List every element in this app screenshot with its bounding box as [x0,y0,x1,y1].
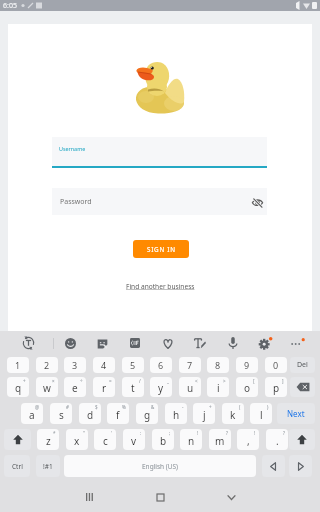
button[interactable]: q [7,377,29,397]
button[interactable]: c [94,429,116,450]
staticText: = [109,378,112,384]
button[interactable]: g [136,403,158,424]
staticText: ? [283,430,285,436]
staticText: × [52,378,55,384]
button[interactable]: w [36,377,58,397]
button[interactable]: Del [290,357,315,373]
button[interactable]: Find another business [126,282,195,291]
button[interactable]: l [250,403,272,424]
staticText: ( [239,404,241,410]
staticText: s [59,408,64,422]
button[interactable]: j [193,403,215,424]
staticText: ÷ [80,378,83,384]
button[interactable]: 3 [64,357,86,373]
staticText: + [23,378,26,384]
button[interactable]: !#1 [36,455,60,477]
staticText: c [103,434,108,448]
button[interactable]: 0 [265,357,287,373]
staticText: @ [35,404,40,410]
button[interactable]: s [50,403,72,424]
button[interactable]: English (US) [64,455,256,477]
button[interactable]: Favourites [158,333,178,353]
staticText: SIGN IN [147,245,176,254]
staticText: Username [59,145,86,152]
staticText: Find another business [126,282,195,291]
staticText: n [188,434,195,448]
staticText: t [131,381,135,395]
staticText: < [195,378,198,384]
button[interactable]: r [93,377,115,397]
button[interactable]: b [152,429,174,450]
button[interactable]: x [66,429,88,450]
staticText: 6 [158,359,164,371]
button[interactable]: Shift [289,429,315,450]
staticText: ' [111,430,113,436]
staticText: ! [197,430,199,436]
button[interactable]: Translate [18,333,38,353]
staticText: # [66,404,69,410]
button[interactable]: Move cursor right [289,455,312,477]
staticText: Next [287,408,305,419]
staticText: ) [267,404,269,410]
staticText: English (US) [142,462,179,471]
button[interactable]: Move cursor left [262,455,285,477]
staticText: - [182,404,184,410]
button[interactable]: p [265,377,287,397]
button[interactable]: Shift [4,429,31,450]
staticText: [ [253,378,255,384]
button[interactable]: Voice input [223,333,243,353]
button[interactable]: GIF [125,333,145,353]
button[interactable]: . [266,429,288,450]
button[interactable]: m [209,429,231,450]
button[interactable]: k [222,403,244,424]
button[interactable]: i [207,377,229,397]
staticText: !#1 [43,462,53,471]
button[interactable]: Next [277,403,315,424]
button[interactable]: 8 [207,357,229,373]
staticText: Ctrl [12,462,23,471]
button[interactable]: 6 [150,357,172,373]
staticText: * [53,430,56,436]
button[interactable]: y [150,377,172,397]
button[interactable]: v [123,429,145,450]
button[interactable]: Emoji [60,333,80,353]
button[interactable]: t [122,377,144,397]
button[interactable]: Show password [249,194,265,210]
button[interactable]: a [21,403,43,424]
staticText: l [260,408,263,422]
button[interactable]: 9 [236,357,258,373]
button[interactable]: SIGN IN [133,240,189,258]
button[interactable]: e [64,377,86,397]
button[interactable]: z [37,429,59,450]
button[interactable]: , [237,429,259,450]
button[interactable]: Backspace [290,377,315,397]
button[interactable]: f [107,403,129,424]
button[interactable]: 5 [122,357,144,373]
staticText: 3 [72,359,78,371]
button[interactable]: Ctrl [4,455,30,477]
staticText: 6:05 [3,1,17,11]
button[interactable]: More [287,333,307,353]
button[interactable]: d [79,403,101,424]
button[interactable]: u [179,377,201,397]
button[interactable]: Stickers [92,333,112,353]
button[interactable]: 1 [7,357,29,373]
staticText: w [43,381,51,395]
button[interactable]: 2 [36,357,58,373]
button[interactable]: Home [144,484,176,510]
button[interactable]: Recent apps [74,484,106,510]
staticText: f [116,408,120,422]
staticText: e [72,381,78,395]
staticText: q [15,381,22,395]
staticText: ! [254,430,256,436]
button[interactable]: n [180,429,202,450]
button[interactable]: Text editing [190,333,210,353]
button[interactable]: h [165,403,187,424]
button[interactable]: Settings [256,333,276,353]
button[interactable]: o [236,377,258,397]
button[interactable]: Back [215,484,247,510]
staticText: a [29,408,35,422]
staticText: i [217,381,220,395]
button[interactable]: 4 [93,357,115,373]
button[interactable]: 7 [179,357,201,373]
